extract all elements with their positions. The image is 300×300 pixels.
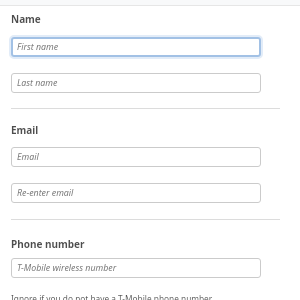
button[interactable]: Last name [17,73,261,93]
staticText: First name [17,41,59,53]
button[interactable]: First name [17,37,261,57]
button[interactable]: Email [17,147,261,167]
staticText: Re-enter email [17,187,74,199]
staticText: Ignore if you do not have a T-Mobile pho… [11,293,213,300]
button[interactable]: T-Mobile wireless number [17,258,261,278]
staticText: Phone number [11,237,85,251]
staticText: T-Mobile wireless number [17,262,117,274]
staticText: Name [11,12,41,26]
staticText: Last name [17,77,58,89]
staticText: Email [11,123,39,137]
button[interactable]: Re-enter email [17,183,261,203]
staticText: Email [17,151,39,163]
